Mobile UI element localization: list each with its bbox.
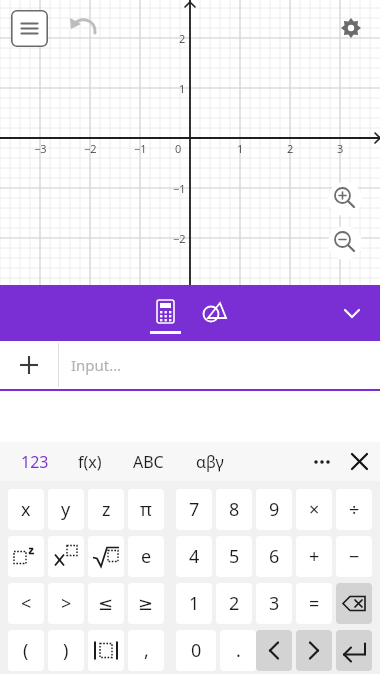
staticText: × — [309, 497, 320, 522]
staticText: 8 — [229, 497, 240, 522]
staticText: −1 — [173, 181, 186, 196]
button[interactable]: More — [304, 442, 340, 481]
button[interactable]: Absolute value — [88, 630, 124, 671]
staticText: −3 — [34, 141, 47, 156]
staticText: 9 — [269, 497, 280, 522]
staticText: ≤ — [98, 593, 114, 614]
staticText: −1 — [134, 141, 147, 156]
staticText: 1 — [179, 81, 186, 96]
staticText: 2 — [229, 591, 240, 616]
button[interactable]: Settings — [337, 14, 365, 42]
button[interactable]: 4 — [176, 536, 212, 577]
staticText: 4 — [189, 544, 200, 569]
button[interactable]: 123 — [9, 442, 61, 481]
staticText: 2 — [179, 31, 186, 46]
button[interactable]: 7 — [176, 489, 212, 530]
button[interactable]: 6 — [256, 536, 292, 577]
button[interactable]: 8 — [216, 489, 252, 530]
button[interactable]: − — [336, 536, 372, 577]
button[interactable]: Left — [256, 630, 292, 671]
button[interactable]: Backspace — [336, 583, 372, 624]
button[interactable]: y — [48, 489, 84, 530]
staticText: 2 — [287, 141, 294, 156]
button[interactable]: + — [296, 536, 332, 577]
button[interactable]: 2 — [216, 583, 252, 624]
staticText: 5 — [229, 544, 240, 569]
staticText: 7 — [189, 497, 200, 522]
button[interactable]: Square — [8, 536, 44, 577]
button[interactable]: Calculator — [149, 285, 182, 341]
staticText: π — [140, 497, 152, 522]
staticText: . — [236, 638, 241, 663]
staticText: f(x) — [78, 451, 102, 473]
button[interactable]: e — [128, 536, 164, 577]
staticText: + — [309, 544, 320, 569]
staticText: Input… — [71, 355, 122, 375]
staticText: ( — [23, 638, 29, 663]
staticText: ABC — [133, 451, 164, 473]
staticText: 3 — [337, 141, 344, 156]
staticText: < — [21, 591, 32, 616]
button[interactable]: × — [296, 489, 332, 530]
button[interactable]: αβγ — [184, 442, 236, 481]
button[interactable]: Collapse — [334, 295, 370, 331]
button[interactable]: . — [220, 630, 256, 671]
staticText: 0 — [175, 141, 182, 156]
button[interactable]: Power — [48, 536, 84, 577]
button[interactable]: x — [8, 489, 44, 530]
button[interactable]: Add input — [0, 341, 58, 389]
button[interactable]: 0 — [176, 630, 216, 671]
staticText: > — [61, 591, 72, 616]
staticText: 6 — [269, 544, 280, 569]
staticText: y — [61, 497, 71, 522]
button[interactable]: 9 — [256, 489, 292, 530]
staticText: = — [309, 591, 320, 616]
staticText: αβγ — [196, 451, 224, 473]
button[interactable]: ) — [48, 630, 84, 671]
button[interactable]: , — [128, 630, 164, 671]
button[interactable]: Geometry — [198, 297, 230, 329]
staticText: z — [102, 497, 111, 522]
button[interactable]: Square root — [88, 536, 124, 577]
button[interactable]: Close keyboard — [342, 442, 376, 481]
button[interactable]: ≤ — [88, 583, 124, 624]
button[interactable]: 3 — [256, 583, 292, 624]
button[interactable]: ( — [8, 630, 44, 671]
staticText: 3 — [269, 591, 280, 616]
button[interactable]: Menu — [11, 10, 48, 47]
button[interactable]: ABC — [122, 442, 174, 481]
button[interactable]: f(x) — [64, 442, 116, 481]
button[interactable]: z — [88, 489, 124, 530]
button[interactable]: ÷ — [336, 489, 372, 530]
button[interactable]: Zoom out — [328, 226, 362, 260]
button[interactable]: Right — [296, 630, 332, 671]
button[interactable]: 1 — [176, 583, 212, 624]
staticText: 1 — [189, 591, 200, 616]
button[interactable]: π — [128, 489, 164, 530]
button[interactable]: Undo — [68, 12, 102, 46]
button[interactable]: Zoom in — [328, 182, 362, 216]
staticText: −2 — [84, 141, 97, 156]
button[interactable]: 5 — [216, 536, 252, 577]
staticText: − — [349, 544, 360, 569]
staticText: ≥ — [138, 593, 154, 614]
staticText: ) — [63, 638, 69, 663]
button[interactable]: > — [48, 583, 84, 624]
staticText: e — [141, 544, 152, 569]
staticText: x — [21, 497, 31, 522]
staticText: 1 — [237, 141, 244, 156]
button[interactable]: Enter — [336, 630, 372, 671]
staticText: −2 — [173, 231, 186, 246]
staticText: ÷ — [349, 497, 360, 522]
staticText: 0 — [191, 638, 202, 663]
button[interactable]: ≥ — [128, 583, 164, 624]
staticText: , — [144, 638, 149, 663]
button[interactable]: < — [8, 583, 44, 624]
staticText: 123 — [21, 451, 49, 473]
button[interactable]: Input… — [71, 341, 380, 389]
button[interactable]: = — [296, 583, 332, 624]
